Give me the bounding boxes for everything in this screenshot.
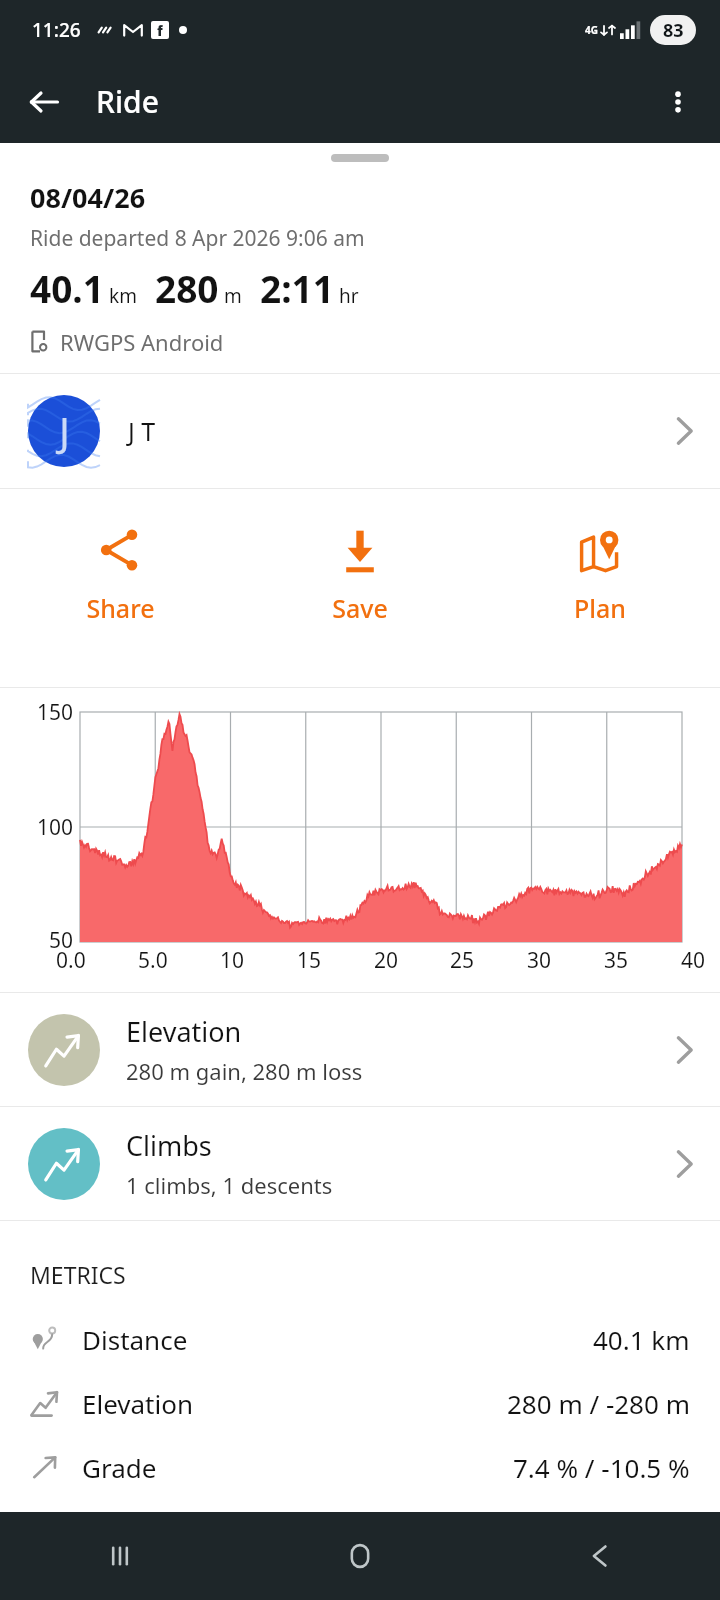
staticText: Plan	[574, 591, 626, 625]
button[interactable]: Climbs	[0, 1107, 720, 1220]
staticText: 100	[37, 813, 74, 842]
staticText: 280 m / -280 m	[507, 1386, 690, 1421]
staticText: J	[59, 404, 70, 458]
button[interactable]: Back	[480, 1512, 720, 1600]
staticText: 30	[527, 946, 552, 975]
staticText: RWGPS Android	[60, 327, 224, 357]
staticText: Climbs	[126, 1127, 212, 1164]
staticText: 1 climbs, 1 descents	[126, 1170, 333, 1200]
staticText: Ride	[96, 81, 159, 122]
staticText: km	[109, 283, 137, 309]
staticText: 150	[37, 698, 74, 727]
staticText: J T	[128, 414, 156, 448]
staticText: 280 m gain, 280 m loss	[126, 1056, 363, 1086]
staticText: Distance	[82, 1322, 188, 1357]
staticText: Elevation	[82, 1386, 193, 1421]
staticText: 08/04/26	[30, 179, 146, 216]
button[interactable]: Save	[240, 489, 480, 687]
staticText: 15	[297, 946, 322, 975]
staticText: 7.4 % / -10.5 %	[513, 1450, 690, 1485]
staticText: 0.0	[56, 946, 86, 975]
staticText: 5.0	[138, 946, 168, 975]
staticText: 280	[155, 263, 219, 313]
staticText: 40.1	[30, 263, 104, 313]
button[interactable]: J	[0, 374, 720, 488]
button[interactable]: Share	[0, 489, 240, 687]
staticText: 10	[220, 946, 245, 975]
button[interactable]: Back	[16, 74, 72, 130]
staticText: 50	[49, 926, 74, 955]
staticText: 40	[681, 946, 706, 975]
button[interactable]: Grade	[30, 1446, 690, 1488]
staticText: 35	[604, 946, 629, 975]
staticText: hr	[339, 283, 359, 309]
staticText: Grade	[82, 1450, 157, 1485]
button[interactable]: Plan	[480, 489, 720, 687]
button[interactable]: Home	[240, 1512, 480, 1600]
staticText: f	[157, 21, 163, 39]
staticText: 40.1 km	[593, 1322, 690, 1357]
staticText: Elevation	[126, 1013, 242, 1050]
button[interactable]: Distance	[30, 1318, 690, 1360]
staticText: 11:26	[32, 17, 81, 43]
staticText: 83	[663, 18, 684, 43]
staticText: METRICS	[30, 1259, 126, 1290]
staticText: 2:11	[260, 263, 334, 313]
staticText: m	[224, 283, 242, 309]
button[interactable]: Elevation	[0, 993, 720, 1106]
button[interactable]: Recent apps	[0, 1512, 240, 1600]
staticText: Save	[332, 591, 388, 625]
button[interactable]: More options	[650, 74, 706, 130]
button[interactable]: Elevation	[30, 1382, 690, 1424]
staticText: 4G	[585, 23, 598, 37]
staticText: Ride departed 8 Apr 2026 9:06 am	[30, 224, 365, 253]
staticText: 25	[450, 946, 475, 975]
staticText: 20	[374, 946, 399, 975]
staticText: Share	[86, 591, 155, 625]
